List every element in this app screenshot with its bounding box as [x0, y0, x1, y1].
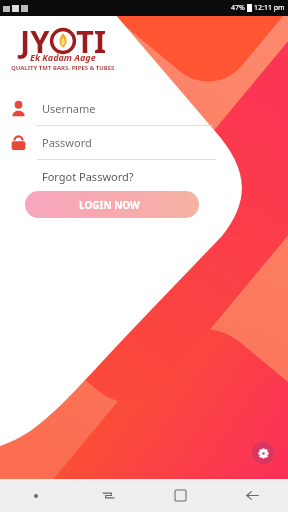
staticText: Password [42, 135, 92, 150]
staticText: JY [20, 20, 50, 62]
button[interactable]: LOGIN NOW [25, 191, 199, 218]
staticText: QUALITY TMT BARS, PIPES & TUBES [11, 64, 115, 72]
button[interactable]: Forgot Password? [40, 167, 136, 186]
button[interactable]: Menu [0, 479, 72, 512]
staticText: 47% [231, 3, 245, 13]
staticText: 12:11 pm [254, 3, 285, 13]
button[interactable]: Recent apps [144, 479, 216, 512]
staticText: TI [76, 20, 106, 62]
staticText: Ek Kadam Aage [30, 51, 96, 63]
button[interactable]: Back [216, 479, 288, 512]
staticText: LOGIN NOW [79, 198, 140, 212]
staticText: Username [42, 101, 96, 116]
button[interactable]: Settings [252, 442, 274, 464]
button[interactable]: Switch keyboard [72, 479, 144, 512]
button[interactable]: Username [8, 96, 212, 126]
button[interactable]: Password [8, 130, 216, 160]
